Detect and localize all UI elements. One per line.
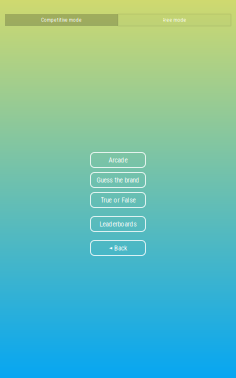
staticText: True or False [100, 196, 135, 204]
button[interactable]: Free mode [118, 14, 231, 26]
staticText: Leaderboards [99, 220, 136, 228]
button[interactable]: True or False [90, 192, 145, 207]
button[interactable]: Guess the brand [90, 172, 145, 187]
button[interactable]: Arcade [90, 152, 145, 167]
staticText: Free mode [162, 17, 186, 23]
staticText: Back [114, 244, 127, 252]
button[interactable]: Leaderboards [90, 216, 145, 231]
staticText: Arcade [108, 156, 127, 164]
staticText: Guess the brand [96, 176, 139, 184]
button[interactable]: Competitive mode [5, 14, 118, 26]
staticText: Competitive mode [41, 17, 82, 23]
button[interactable]: Back [90, 240, 145, 255]
